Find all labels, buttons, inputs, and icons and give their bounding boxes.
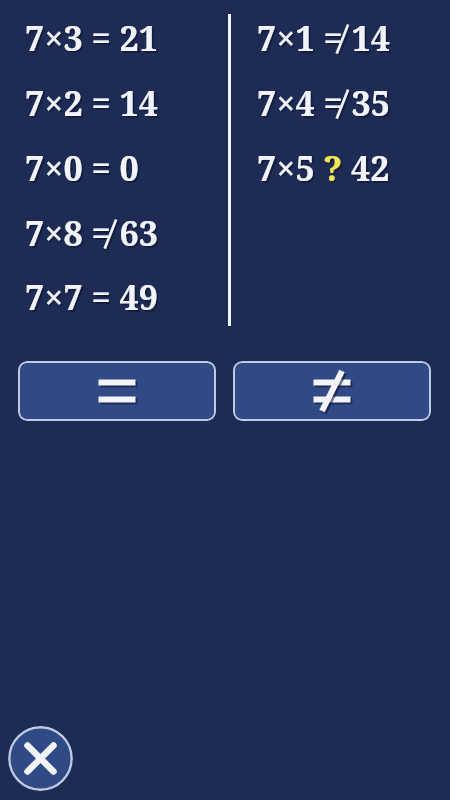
button[interactable]: Not equals xyxy=(233,361,431,421)
button[interactable]: Equals xyxy=(18,361,216,421)
button[interactable]: Close xyxy=(8,726,73,791)
